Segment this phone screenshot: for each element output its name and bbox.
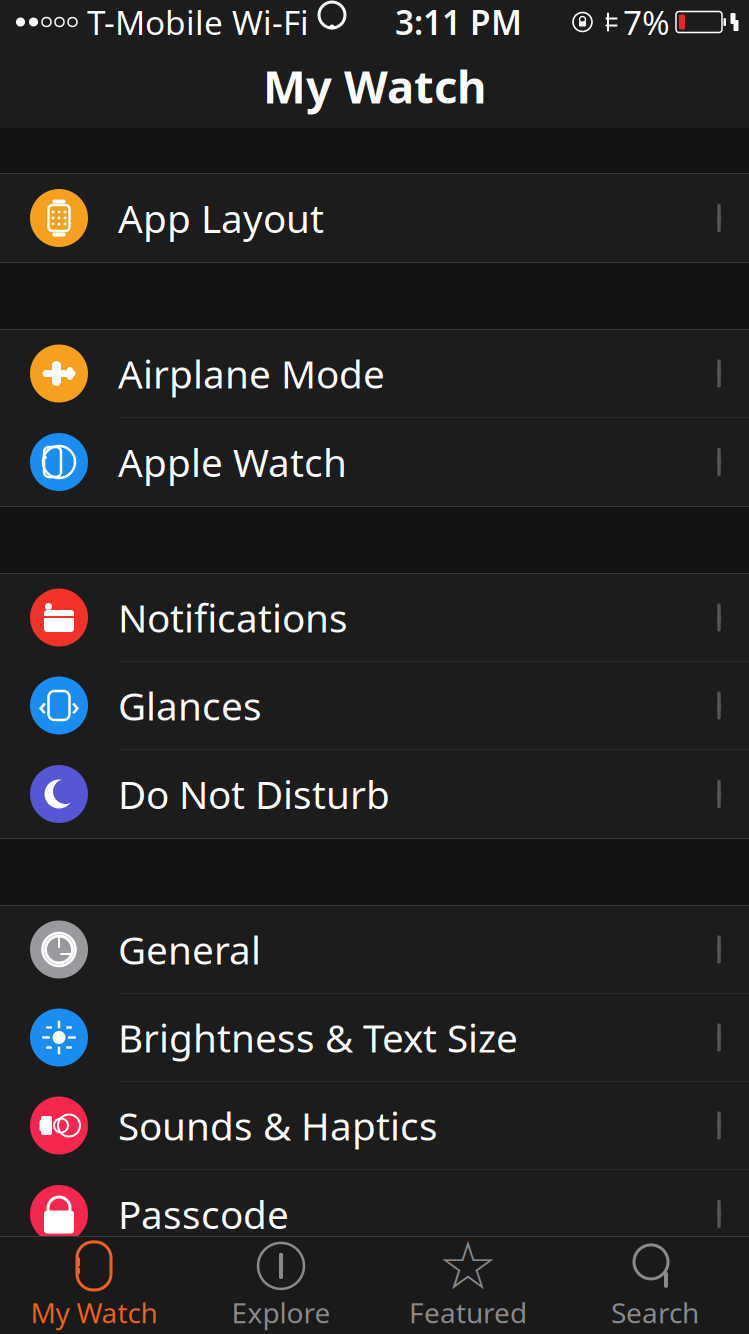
staticText: Do Not Disturb <box>118 768 390 820</box>
button[interactable]: ★ <box>374 1236 561 1334</box>
staticText: Featured <box>409 1294 527 1331</box>
button[interactable]: Passcode <box>0 1170 749 1258</box>
button[interactable]: Explore <box>187 1236 374 1334</box>
staticText: 7% <box>623 0 670 44</box>
staticText: Glances <box>118 680 262 731</box>
button[interactable]: Notifications <box>0 574 749 662</box>
staticText: ‹ <box>38 689 47 722</box>
staticText: General <box>118 924 261 975</box>
staticText: Apple Watch <box>118 436 347 488</box>
staticText: › <box>71 689 80 722</box>
button[interactable]: Brightness & Text Size <box>0 994 749 1082</box>
button[interactable]: My Watch <box>0 1236 187 1334</box>
staticText: T-Mobile Wi-Fi <box>87 0 309 44</box>
staticText: Airplane Mode <box>118 348 385 399</box>
staticText: Explore <box>231 1294 330 1331</box>
button[interactable]: App Layout <box>0 174 749 262</box>
staticText: Sounds & Haptics <box>118 1100 438 1151</box>
button[interactable]: Apple Watch <box>0 418 749 506</box>
button[interactable]: Airplane Mode <box>0 330 749 418</box>
staticText: Brightness & Text Size <box>118 1012 518 1063</box>
button[interactable]: Sounds & Haptics <box>0 1082 749 1170</box>
staticText: Search <box>611 1294 699 1331</box>
staticText: 3:11 PM <box>395 0 522 44</box>
button[interactable]: ‹ <box>0 662 749 750</box>
staticText: ★ <box>438 1228 498 1304</box>
staticText: My Watch <box>30 1294 157 1331</box>
button[interactable]: General <box>0 906 749 994</box>
staticText: Notifications <box>118 592 348 643</box>
staticText: Passcode <box>118 1188 289 1240</box>
button[interactable]: Search <box>561 1236 748 1334</box>
staticText: App Layout <box>118 192 324 244</box>
button[interactable]: Do Not Disturb <box>0 750 749 838</box>
staticText: ☆ <box>438 1228 498 1304</box>
staticText: My Watch <box>263 56 486 116</box>
